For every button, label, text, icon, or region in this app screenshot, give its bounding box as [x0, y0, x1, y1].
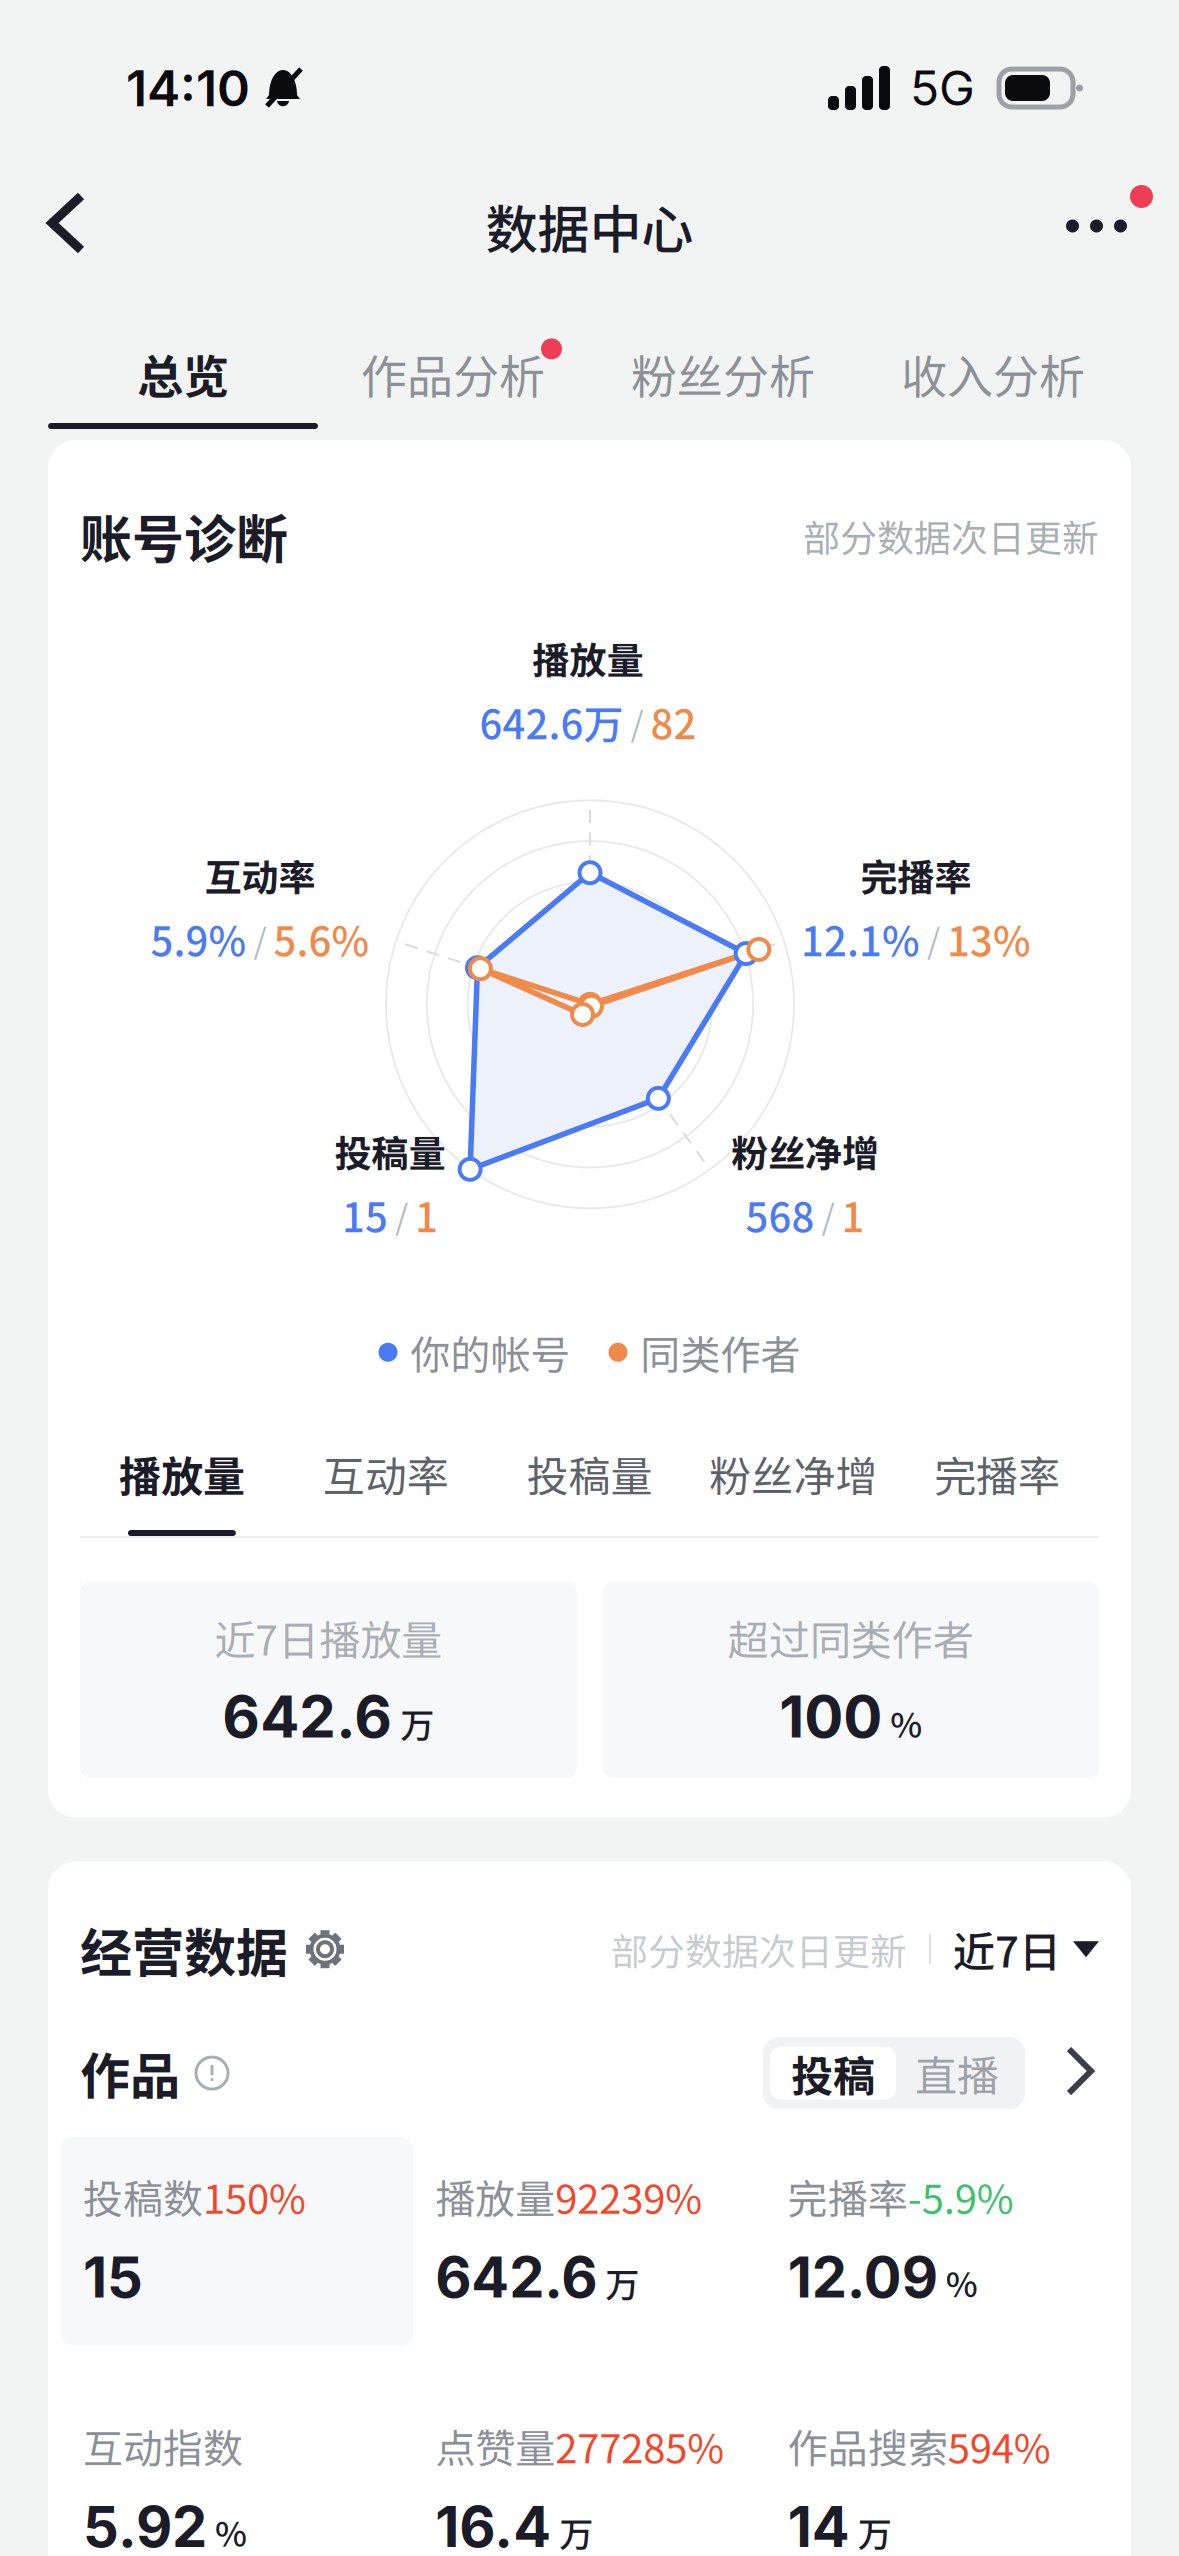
- staticText: 经营数据: [80, 1912, 288, 1987]
- staticText: 13%: [947, 910, 1031, 968]
- staticText: 16.4: [435, 2493, 551, 2556]
- staticText: 完播率: [934, 1443, 1060, 1504]
- staticText: 近7日播放量: [214, 1608, 442, 1667]
- staticText: 万: [400, 1698, 434, 1747]
- staticText: 同类作者: [640, 1323, 800, 1381]
- staticText: 收入分析: [901, 340, 1085, 407]
- staticText: 100: [779, 1681, 882, 1752]
- button[interactable]: 作品分析: [318, 340, 588, 440]
- staticText: 12.09: [788, 2243, 938, 2311]
- staticText: 万: [559, 2507, 593, 2556]
- staticText: 5.6%: [273, 910, 369, 968]
- staticText: 594%: [948, 2417, 1051, 2475]
- staticText: 直播: [915, 2043, 999, 2103]
- staticText: 82: [650, 693, 696, 751]
- button[interactable]: 播放量: [80, 1443, 284, 1536]
- staticText: 150%: [203, 2167, 306, 2225]
- staticText: 部分数据次日更新: [803, 509, 1099, 562]
- staticText: 作品搜索: [788, 2417, 948, 2475]
- button[interactable]: 投稿量: [488, 1443, 691, 1536]
- button[interactable]: 投稿: [770, 2047, 896, 2100]
- staticText: 642.6: [222, 1681, 392, 1752]
- staticText: -5.9%: [908, 2167, 1014, 2225]
- staticText: %: [946, 2258, 978, 2307]
- staticText: 15: [83, 2243, 143, 2311]
- staticText: 播放量: [435, 2167, 555, 2225]
- staticText: 14:10: [126, 58, 250, 118]
- button[interactable]: More options: [1041, 193, 1175, 259]
- staticText: 5G: [910, 59, 975, 117]
- staticText: /: [821, 1190, 834, 1239]
- staticText: 完播率: [788, 2167, 908, 2225]
- button[interactable]: 直播: [896, 2047, 1018, 2100]
- staticText: /: [630, 697, 643, 746]
- button[interactable]: 完播率: [895, 1443, 1099, 1536]
- staticText: 万: [605, 2258, 639, 2307]
- button[interactable]: 粉丝分析: [588, 340, 858, 440]
- staticText: 播放量: [119, 1443, 245, 1504]
- staticText: 12.1%: [801, 910, 920, 968]
- staticText: 1: [415, 1186, 438, 1244]
- staticText: 投稿量: [526, 1443, 652, 1504]
- staticText: /: [253, 914, 266, 963]
- staticText: 互动率: [323, 1443, 449, 1504]
- staticText: 互动率: [204, 848, 315, 902]
- staticText: 互动指数: [83, 2417, 243, 2475]
- staticText: /: [395, 1190, 408, 1239]
- staticText: 642.6万: [479, 693, 623, 751]
- button[interactable]: 收入分析: [858, 340, 1128, 440]
- staticText: 部分数据次日更新: [611, 1922, 907, 1976]
- staticText: 14: [788, 2493, 850, 2556]
- staticText: 近7日: [953, 1919, 1061, 1980]
- staticText: 粉丝分析: [631, 340, 815, 407]
- staticText: 投稿数: [83, 2167, 203, 2225]
- staticText: 15: [342, 1186, 388, 1244]
- staticText: 总览: [137, 340, 229, 407]
- staticText: 5.9%: [150, 910, 246, 968]
- staticText: 完播率: [860, 848, 971, 902]
- staticText: 568: [745, 1186, 814, 1244]
- staticText: 超过同类作者: [728, 1608, 974, 1667]
- staticText: 投稿: [791, 2043, 875, 2103]
- staticText: 1: [841, 1186, 864, 1244]
- staticText: 点赞量: [435, 2417, 555, 2475]
- staticText: 播放量: [532, 631, 643, 685]
- button[interactable]: 粉丝净增: [691, 1443, 895, 1536]
- staticText: /: [927, 914, 940, 963]
- button[interactable]: 近7日: [953, 1919, 1099, 1980]
- staticText: 277285%: [555, 2417, 724, 2475]
- staticText: 5.92: [83, 2493, 207, 2556]
- staticText: 数据中心: [485, 188, 693, 264]
- staticText: 账号诊断: [80, 498, 288, 573]
- button[interactable]: 总览: [48, 340, 318, 440]
- staticText: 粉丝净增: [731, 1124, 879, 1178]
- staticText: 92239%: [555, 2167, 702, 2225]
- staticText: 作品: [80, 2037, 180, 2109]
- staticText: 投稿量: [334, 1124, 445, 1178]
- staticText: 粉丝净增: [709, 1443, 877, 1504]
- staticText: %: [890, 1698, 922, 1747]
- staticText: 你的帐号: [410, 1323, 570, 1381]
- button[interactable]: See all works: [1025, 2049, 1099, 2097]
- staticText: 万: [858, 2507, 892, 2556]
- staticText: 642.6: [435, 2243, 597, 2311]
- staticText: %: [215, 2507, 247, 2556]
- staticText: 作品分析: [361, 340, 545, 407]
- button[interactable]: Back: [26, 170, 114, 282]
- button[interactable]: 互动率: [284, 1443, 488, 1536]
